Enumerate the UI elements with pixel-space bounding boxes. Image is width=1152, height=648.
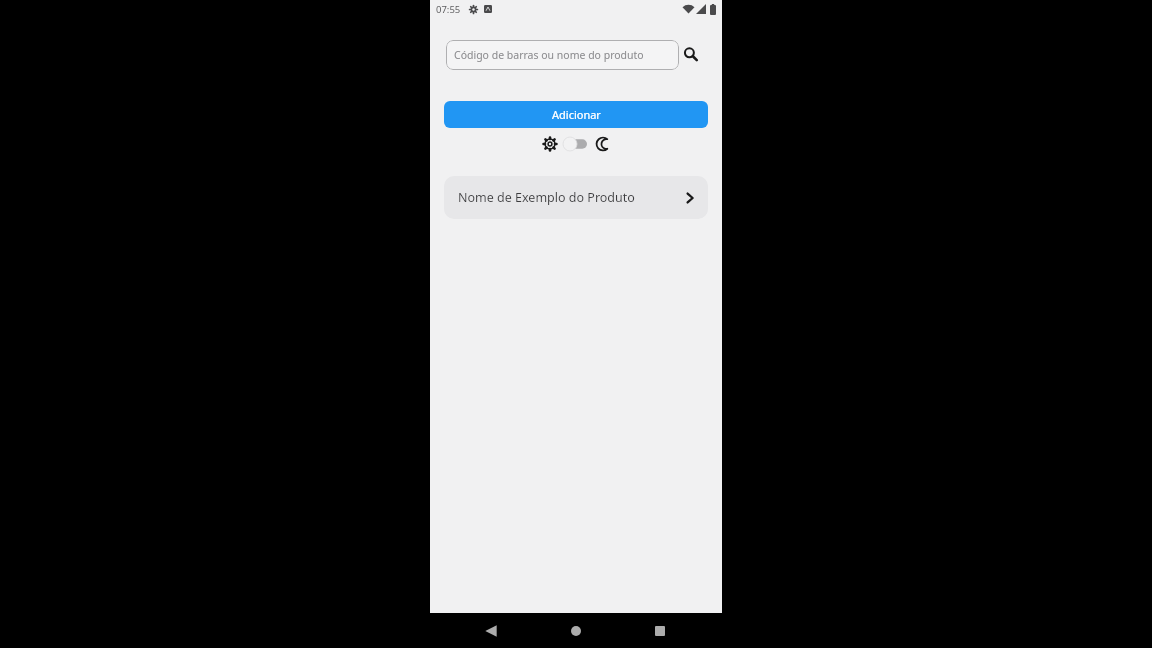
button[interactable] [638,613,682,648]
button[interactable] [596,137,610,151]
staticText: Adicionar [552,107,601,122]
staticText: Nome de Exemplo do Produto [458,189,635,206]
button[interactable] [469,613,513,648]
button[interactable] [554,613,598,648]
staticText: Código de barras ou nome do produto [454,48,644,62]
button[interactable]: Adicionar [444,101,708,128]
button[interactable] [683,47,699,63]
button[interactable] [542,136,558,152]
button[interactable] [563,137,587,151]
button[interactable]: Nome de Exemplo do Produto [444,176,708,219]
staticText: 07:55 [436,3,461,16]
button[interactable]: Código de barras ou nome do produto [446,40,679,70]
